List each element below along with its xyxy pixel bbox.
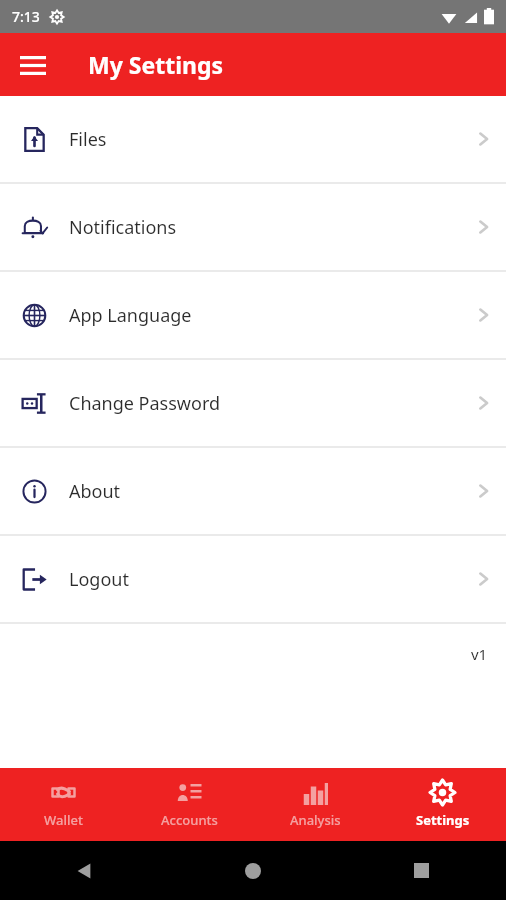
staticText: Wallet	[44, 811, 83, 829]
staticText: About	[69, 479, 121, 504]
button[interactable]: About	[0, 448, 506, 534]
staticText: Analysis	[290, 811, 341, 829]
button[interactable]: Change Password	[0, 360, 506, 446]
button[interactable]: Open navigation menu	[10, 42, 56, 88]
staticText: v1	[471, 644, 488, 664]
staticText: App Language	[69, 303, 192, 328]
button[interactable]: Files	[0, 96, 506, 182]
staticText: Notifications	[69, 215, 177, 240]
button[interactable]: Settings	[379, 774, 506, 835]
staticText: Accounts	[161, 811, 218, 829]
button[interactable]: Logout	[0, 536, 506, 622]
staticText: Change Password	[69, 391, 221, 416]
staticText: 7:13	[12, 7, 40, 26]
staticText: My Settings	[88, 49, 224, 80]
button[interactable]: Analysis	[252, 774, 379, 835]
button[interactable]: Accounts	[126, 774, 252, 835]
button[interactable]: App Language	[0, 272, 506, 358]
button[interactable]: Notifications	[0, 184, 506, 270]
staticText: Files	[69, 127, 107, 152]
staticText: Logout	[69, 567, 129, 592]
button[interactable]: Wallet	[0, 774, 126, 835]
staticText: Settings	[416, 811, 470, 829]
